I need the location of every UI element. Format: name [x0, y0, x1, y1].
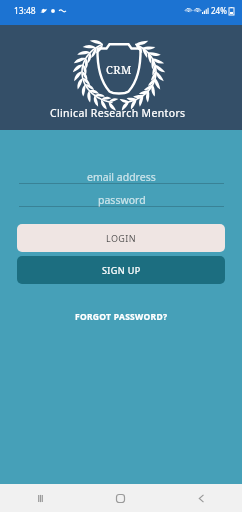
staticText: Clinical Research Mentors — [50, 106, 186, 120]
staticText: FORGOT PASSWORD? — [75, 311, 168, 323]
button[interactable]: Back — [161, 484, 242, 512]
staticText: SIGN UP — [102, 264, 141, 276]
button[interactable]: Recents — [0, 484, 80, 512]
staticText: 24% — [211, 5, 227, 16]
staticText: 13:48 — [14, 5, 36, 17]
button[interactable]: Home — [80, 484, 161, 512]
button[interactable]: LOGIN — [17, 224, 225, 252]
button[interactable]: email address — [19, 164, 224, 184]
staticText: email address — [87, 170, 156, 184]
staticText: password — [98, 193, 146, 207]
button[interactable]: FORGOT PASSWORD? — [67, 307, 176, 327]
staticText: LOGIN — [106, 232, 137, 244]
button[interactable]: SIGN UP — [17, 256, 225, 284]
button[interactable]: password — [19, 187, 224, 207]
staticText: CRM — [106, 62, 132, 77]
